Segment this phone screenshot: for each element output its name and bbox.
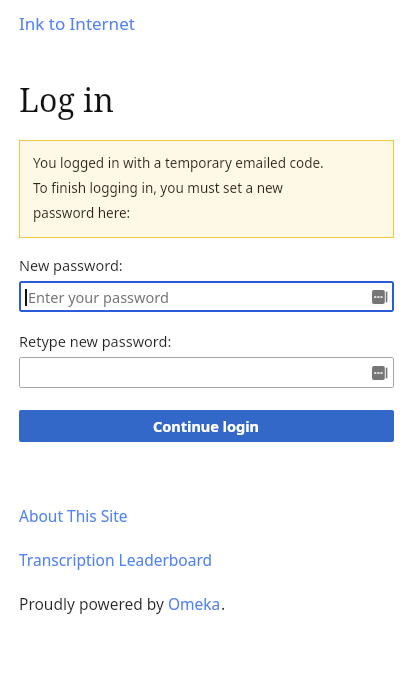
button[interactable]: Transcription Leaderboard [19, 549, 213, 570]
staticText: Retype new password: [19, 331, 172, 351]
button[interactable]: Ink to Internet [19, 12, 135, 35]
button[interactable]: Enter your password [19, 281, 394, 312]
button[interactable]: Continue login [19, 410, 394, 442]
staticText: password here: [33, 204, 131, 222]
button[interactable]: About This Site [19, 505, 128, 526]
staticText: Omeka [168, 593, 221, 614]
other: Show password [372, 290, 388, 304]
button[interactable]: Omeka [168, 593, 221, 614]
staticText: To finish logging in, you must set a new [33, 179, 283, 197]
staticText: New password: [19, 255, 123, 275]
staticText: Ink to Internet [19, 12, 135, 35]
other: Show password [372, 366, 388, 380]
staticText: About This Site [19, 505, 128, 526]
staticText: Transcription Leaderboard [19, 549, 213, 570]
staticText: Log in [19, 78, 114, 122]
staticText: Continue login [153, 416, 260, 436]
staticText: . [221, 593, 226, 614]
button[interactable]: Show password [19, 357, 394, 388]
staticText: Proudly powered by [19, 593, 168, 614]
staticText: Enter your password [28, 287, 169, 307]
staticText: You logged in with a temporary emailed c… [33, 154, 324, 172]
